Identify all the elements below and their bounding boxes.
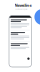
- button[interactable]: Compose: [27, 57, 30, 60]
- staticText: read the world, daily: [15, 8, 28, 10]
- staticText: Newsline: [15, 2, 32, 8]
